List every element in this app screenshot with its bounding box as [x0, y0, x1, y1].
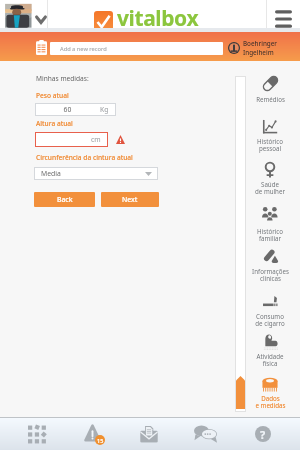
staticText: Media	[41, 169, 145, 178]
button[interactable]: Histórico familiar	[247, 205, 293, 242]
button[interactable]: Back	[34, 192, 95, 207]
button[interactable]: Profile	[3, 2, 33, 29]
staticText: Saúde de mulher	[255, 180, 285, 195]
staticText: 15	[97, 437, 104, 444]
staticText: Minhas medidas:	[36, 74, 89, 83]
button[interactable]: Messages	[120, 417, 177, 450]
button[interactable]: Account menu	[33, 6, 47, 34]
staticText: Kg	[100, 105, 109, 114]
staticText: vitalbox	[117, 4, 199, 32]
button[interactable]: Remédios	[247, 74, 293, 103]
staticText: Remédios	[256, 95, 285, 103]
staticText: cm	[91, 135, 101, 144]
staticText: Boehringer	[243, 39, 278, 48]
button[interactable]: Alerts	[64, 417, 120, 450]
button[interactable]: Media	[34, 167, 158, 180]
staticText: Informações clínicas	[252, 267, 289, 282]
button[interactable]: Dashboard	[8, 417, 64, 450]
staticText: Ingelheim	[243, 48, 274, 57]
button[interactable]: Menu	[267, 5, 300, 33]
button[interactable]: Next	[101, 192, 159, 207]
staticText: Altura atual	[36, 119, 73, 128]
staticText: Consumo de cigarro	[255, 312, 285, 327]
button[interactable]: 60	[35, 103, 116, 116]
staticText: Atividade física	[256, 352, 284, 367]
button[interactable]: Atividade física	[247, 333, 293, 367]
staticText: Peso atual	[36, 91, 69, 100]
button[interactable]: New record	[36, 40, 47, 55]
staticText: Add a new record	[60, 45, 107, 53]
staticText: Histórico pessoal	[257, 137, 283, 152]
staticText: Dados e medidas	[255, 394, 286, 409]
button[interactable]: Dados e medidas	[247, 377, 293, 409]
button[interactable]: Boehringer	[228, 39, 278, 57]
staticText: Back	[57, 195, 73, 204]
staticText: 60	[35, 105, 100, 114]
staticText: Circunferência da cintura atual	[36, 153, 133, 162]
staticText: Histórico familiar	[257, 227, 283, 242]
button[interactable]: Histórico pessoal	[247, 119, 293, 152]
button[interactable]: Consumo de cigarro	[247, 293, 293, 327]
staticText: ?	[260, 427, 266, 442]
button[interactable]: cm	[35, 132, 108, 147]
button[interactable]: Help	[234, 417, 291, 450]
button[interactable]: Informações clínicas	[247, 248, 293, 282]
button[interactable]: Saúde de mulher	[247, 162, 293, 195]
button[interactable]: Chat	[177, 417, 234, 450]
staticText: Next	[122, 195, 138, 204]
button[interactable]: Add a new record	[50, 42, 223, 55]
